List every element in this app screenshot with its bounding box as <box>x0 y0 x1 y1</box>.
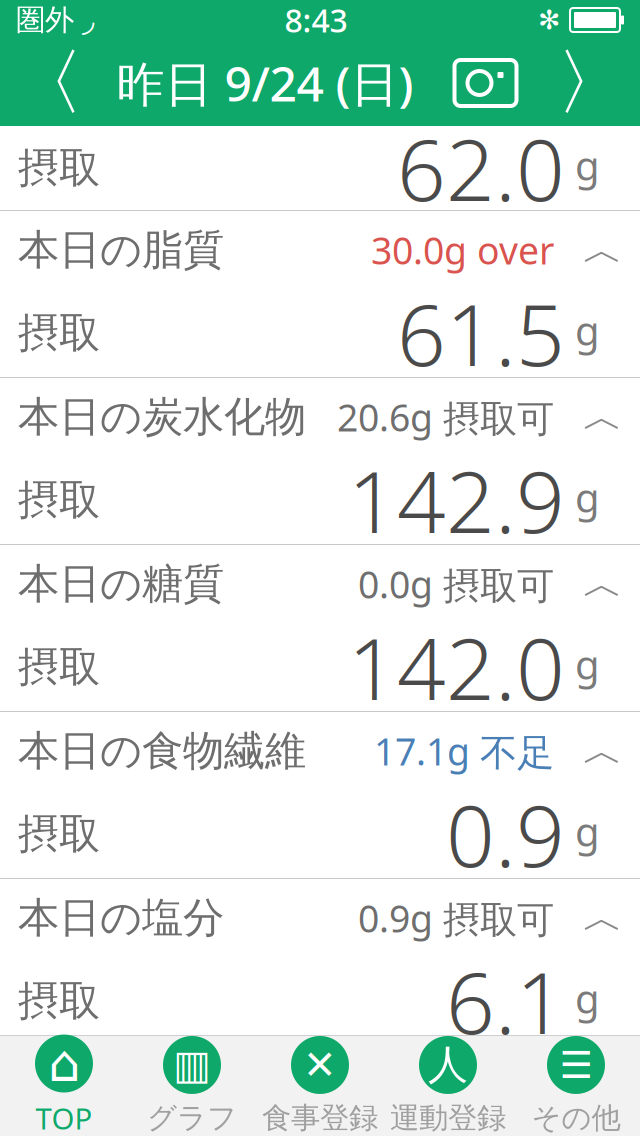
button[interactable]: 本日の糖質 <box>0 545 640 623</box>
staticText: 〈 <box>12 39 84 127</box>
button[interactable]: ▥ <box>128 1036 256 1136</box>
staticText: 6.1 <box>446 944 565 1058</box>
staticText: g <box>565 138 600 191</box>
staticText: g <box>565 637 600 690</box>
staticText: 人 <box>428 1040 468 1089</box>
button[interactable]: ⌂ <box>0 1036 128 1136</box>
button[interactable]: 写真 <box>447 40 523 126</box>
staticText: 本日の糖質 <box>18 559 224 609</box>
staticText: ✻ <box>538 5 560 35</box>
staticText: 昨日 9/24 (日) <box>116 51 413 115</box>
staticText: 摂取 <box>18 308 100 358</box>
staticText: ☰ <box>559 1044 592 1086</box>
staticText: 30.0g over <box>371 225 554 275</box>
staticText: 摂取 <box>18 976 100 1026</box>
staticText: TOP <box>35 1098 92 1136</box>
staticText: ⌂ <box>48 1035 80 1092</box>
staticText: ︿ <box>583 392 623 441</box>
staticText: ︿ <box>583 225 623 274</box>
staticText: g <box>565 971 600 1024</box>
button[interactable]: 本日の食物繊維 <box>0 712 640 790</box>
staticText: 8:43 <box>284 0 347 41</box>
staticText: g <box>565 303 600 356</box>
staticText: 摂取 <box>18 809 100 859</box>
staticText: 0.9g 摂取可 <box>358 893 554 943</box>
staticText: 142.0 <box>348 610 565 724</box>
staticText: 本日の食物繊維 <box>18 726 306 776</box>
button[interactable]: 前の日 <box>6 40 90 126</box>
staticText: 0.9 <box>446 777 565 891</box>
staticText: ︿ <box>583 893 623 942</box>
staticText: 本日の塩分 <box>18 893 224 943</box>
staticText: 本日の脂質 <box>18 225 224 275</box>
button[interactable]: ✕ <box>256 1036 384 1136</box>
staticText: g <box>565 804 600 857</box>
button[interactable]: 本日の脂質 <box>0 211 640 289</box>
staticText: g <box>565 470 600 523</box>
staticText: ✕ <box>303 1042 337 1088</box>
button[interactable]: 本日の炭水化物 <box>0 378 640 456</box>
staticText: ▥ <box>173 1042 211 1088</box>
staticText: 0.0g 摂取可 <box>358 559 554 609</box>
button[interactable]: 次の日 <box>550 40 634 126</box>
staticText: 〉 <box>556 39 628 127</box>
button[interactable]: 本日の塩分 <box>0 879 640 957</box>
staticText: 摂取 <box>18 143 100 193</box>
staticText: 62.0 <box>397 111 565 225</box>
staticText: 142.9 <box>348 443 565 557</box>
staticText: 運動登録 <box>390 1100 506 1136</box>
staticText: 61.5 <box>397 276 565 390</box>
staticText: 本日の炭水化物 <box>18 392 306 442</box>
staticText: 17.1g 不足 <box>374 726 554 776</box>
staticText: 摂取 <box>18 475 100 525</box>
staticText: 20.6g 摂取可 <box>337 392 554 442</box>
staticText: 摂取 <box>18 642 100 692</box>
staticText: ︿ <box>583 559 623 608</box>
staticText: ︿ <box>583 726 623 775</box>
button[interactable]: 人 <box>384 1036 512 1136</box>
staticText: グラフ <box>147 1100 237 1136</box>
staticText <box>74 0 82 39</box>
staticText: その他 <box>531 1100 620 1136</box>
staticText: 食事登録 <box>262 1100 378 1136</box>
staticText: ◞ <box>82 2 94 38</box>
button[interactable]: ☰ <box>512 1036 640 1136</box>
staticText: 圏外 <box>16 2 74 38</box>
